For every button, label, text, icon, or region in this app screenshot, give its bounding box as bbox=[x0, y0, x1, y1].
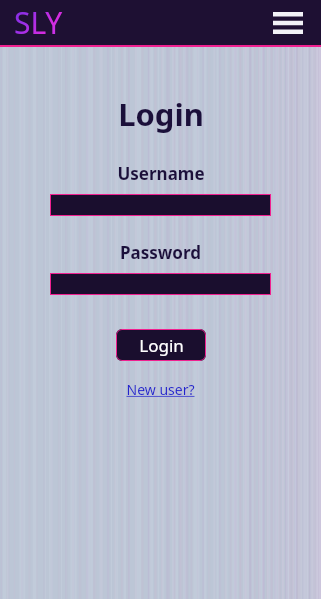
staticText: New user? bbox=[126, 380, 195, 399]
button[interactable]: Open menu bbox=[271, 6, 305, 40]
button[interactable]: Login bbox=[116, 329, 206, 361]
staticText: Login bbox=[139, 334, 184, 357]
button[interactable]: SLY bbox=[14, 2, 63, 43]
staticText: Password bbox=[120, 241, 201, 264]
button[interactable] bbox=[50, 273, 271, 295]
staticText: Username bbox=[117, 162, 205, 185]
button[interactable]: New user? bbox=[122, 378, 199, 401]
button[interactable] bbox=[50, 194, 271, 216]
staticText: Login bbox=[118, 93, 204, 135]
